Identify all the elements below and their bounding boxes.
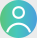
button[interactable]: Profile <box>0 0 37 38</box>
